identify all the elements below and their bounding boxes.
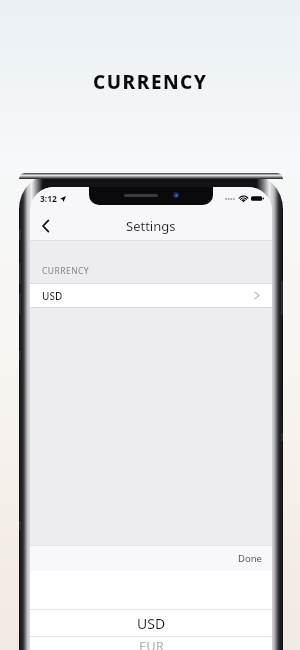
staticText: EUR [139, 637, 164, 650]
button[interactable]: Back [35, 215, 57, 237]
button[interactable]: USD [30, 283, 272, 308]
staticText: Settings [126, 217, 176, 235]
staticText: USD [137, 614, 166, 633]
staticText: Done [238, 552, 262, 565]
button[interactable]: Done [238, 552, 262, 565]
staticText: USD [42, 289, 63, 303]
staticText: CURRENCY [42, 265, 90, 277]
staticText: 3:12 [40, 193, 57, 205]
staticText: CURRENCY [93, 69, 208, 95]
